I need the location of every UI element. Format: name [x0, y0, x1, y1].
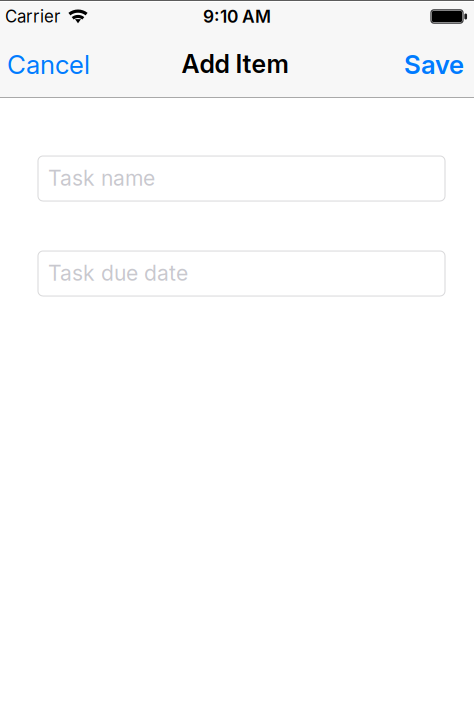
button[interactable]: Save [392, 38, 474, 90]
button[interactable]: Task name [38, 156, 445, 201]
staticText: Cancel [7, 49, 90, 80]
staticText: Task due date [48, 260, 188, 286]
button[interactable]: Task due date [38, 251, 445, 296]
staticText: 9:10 AM [203, 6, 271, 27]
button[interactable]: Cancel [0, 38, 98, 90]
staticText: Task name [48, 165, 155, 191]
staticText: Carrier [5, 6, 60, 27]
staticText: Add Item [181, 49, 288, 79]
staticText: Save [404, 49, 464, 80]
